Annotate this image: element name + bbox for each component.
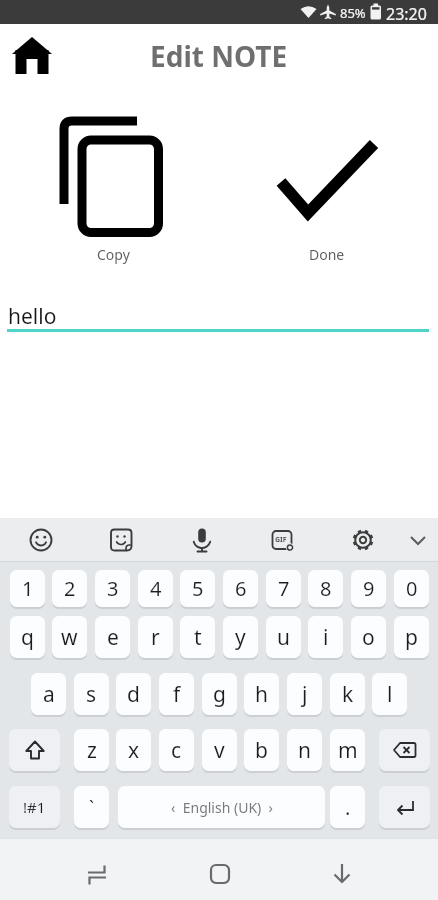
staticText: i bbox=[323, 623, 329, 652]
staticText: d bbox=[127, 680, 140, 709]
button[interactable]: x bbox=[116, 729, 151, 771]
button[interactable]: u bbox=[266, 616, 301, 658]
button[interactable]: b bbox=[244, 729, 279, 771]
button[interactable]: !#1 bbox=[9, 786, 60, 828]
staticText: r bbox=[151, 623, 160, 652]
button[interactable]: s bbox=[74, 673, 109, 715]
button[interactable]: y bbox=[223, 616, 258, 658]
button[interactable]: i bbox=[308, 616, 343, 658]
button[interactable]: ` bbox=[74, 786, 109, 828]
staticText: f bbox=[173, 680, 181, 709]
button[interactable]: ‹ English (UK) › bbox=[118, 786, 325, 828]
staticText: m bbox=[338, 736, 358, 765]
staticText: b bbox=[255, 736, 268, 765]
button[interactable]: 3 bbox=[95, 570, 130, 607]
staticText: s bbox=[86, 680, 97, 709]
staticText: Edit NOTE bbox=[150, 37, 288, 75]
button[interactable]: 1 bbox=[10, 570, 45, 607]
button[interactable] bbox=[379, 786, 430, 828]
staticText: ` bbox=[89, 795, 95, 820]
button[interactable]: q bbox=[10, 616, 45, 658]
staticText: p bbox=[405, 623, 418, 652]
staticText: 23:20 bbox=[386, 3, 427, 25]
staticText: 5 bbox=[192, 575, 204, 602]
button[interactable] bbox=[320, 852, 364, 896]
button[interactable] bbox=[75, 852, 119, 896]
staticText: 9 bbox=[363, 575, 375, 602]
button[interactable]: k bbox=[330, 673, 365, 715]
button[interactable] bbox=[182, 520, 222, 560]
button[interactable]: 5 bbox=[180, 570, 215, 607]
button[interactable]: GIF bbox=[262, 520, 302, 560]
staticText: v bbox=[214, 736, 225, 765]
button[interactable] bbox=[6, 30, 58, 80]
staticText: 6 bbox=[235, 575, 247, 602]
button[interactable]: z bbox=[74, 729, 109, 771]
button[interactable]: f bbox=[159, 673, 194, 715]
staticText: y bbox=[235, 623, 246, 652]
staticText: x bbox=[128, 736, 140, 765]
button[interactable]: g bbox=[202, 673, 237, 715]
staticText: 3 bbox=[107, 575, 119, 602]
button[interactable]: Copy bbox=[56, 112, 170, 264]
staticText: ‹ English (UK) › bbox=[171, 798, 273, 817]
staticText: w bbox=[61, 623, 78, 652]
staticText: !#1 bbox=[23, 797, 46, 817]
button[interactable] bbox=[21, 520, 61, 560]
staticText: n bbox=[298, 736, 311, 765]
button[interactable]: v bbox=[202, 729, 237, 771]
button[interactable]: 9 bbox=[351, 570, 386, 607]
button[interactable]: Done bbox=[270, 112, 384, 264]
button[interactable]: p bbox=[394, 616, 429, 658]
button[interactable] bbox=[9, 729, 60, 771]
staticText: l bbox=[387, 680, 393, 709]
staticText: Done bbox=[309, 245, 345, 264]
button[interactable]: 7 bbox=[266, 570, 301, 607]
staticText: 4 bbox=[150, 575, 162, 602]
staticText: j bbox=[302, 680, 308, 709]
staticText: GIF bbox=[275, 535, 287, 545]
button[interactable]: 6 bbox=[223, 570, 258, 607]
button[interactable]: h bbox=[244, 673, 279, 715]
staticText: h bbox=[255, 680, 268, 709]
button[interactable]: d bbox=[116, 673, 151, 715]
button[interactable]: r bbox=[138, 616, 173, 658]
button[interactable]: 2 bbox=[52, 570, 87, 607]
staticText: 7 bbox=[278, 575, 290, 602]
button[interactable]: c bbox=[159, 729, 194, 771]
button[interactable]: t bbox=[180, 616, 215, 658]
staticText: g bbox=[213, 680, 226, 709]
staticText: 1 bbox=[22, 575, 34, 602]
button[interactable]: m bbox=[330, 729, 365, 771]
button[interactable] bbox=[379, 729, 430, 771]
button[interactable]: 0 bbox=[394, 570, 429, 607]
button[interactable]: . bbox=[330, 786, 365, 828]
staticText: Copy bbox=[97, 245, 130, 264]
staticText: 0 bbox=[406, 575, 418, 602]
button[interactable]: w bbox=[52, 616, 87, 658]
staticText: k bbox=[342, 680, 354, 709]
button[interactable]: l bbox=[372, 673, 407, 715]
staticText: a bbox=[43, 680, 55, 709]
button[interactable]: 4 bbox=[138, 570, 173, 607]
button[interactable] bbox=[343, 520, 383, 560]
button[interactable] bbox=[198, 852, 242, 896]
staticText: 2 bbox=[64, 575, 76, 602]
button[interactable]: j bbox=[287, 673, 322, 715]
staticText: 85% bbox=[340, 4, 366, 22]
staticText: q bbox=[21, 623, 34, 652]
button[interactable]: hello bbox=[0, 295, 438, 337]
button[interactable]: 8 bbox=[308, 570, 343, 607]
staticText: e bbox=[107, 623, 119, 652]
button[interactable]: o bbox=[351, 616, 386, 658]
button[interactable] bbox=[398, 520, 438, 560]
button[interactable]: e bbox=[95, 616, 130, 658]
staticText: hello bbox=[8, 302, 57, 331]
staticText: . bbox=[345, 794, 351, 821]
staticText: u bbox=[277, 623, 290, 652]
button[interactable]: n bbox=[287, 729, 322, 771]
staticText: t bbox=[194, 623, 202, 652]
staticText: c bbox=[171, 736, 182, 765]
button[interactable] bbox=[101, 520, 141, 560]
button[interactable]: a bbox=[31, 673, 66, 715]
